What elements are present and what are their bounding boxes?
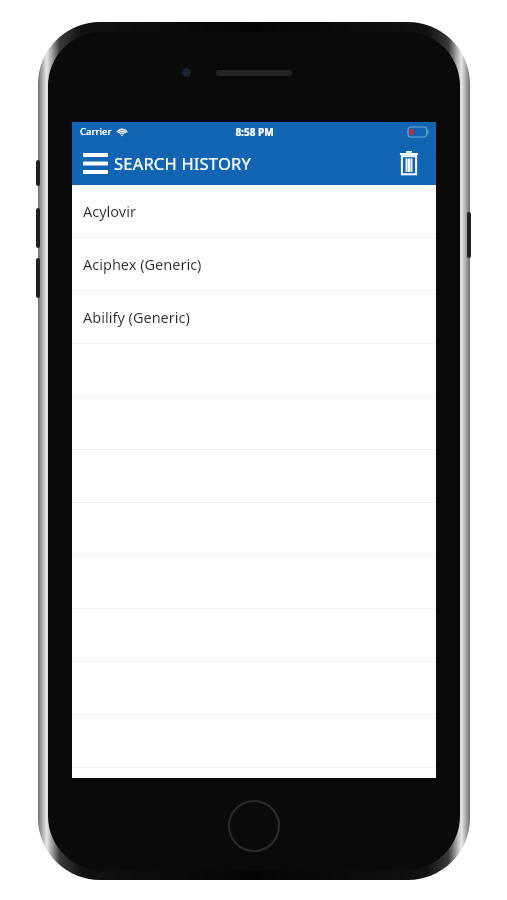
staticText: 8:58 PM bbox=[235, 125, 274, 139]
staticText: Carrier bbox=[80, 125, 112, 138]
staticText: Abilify (Generic) bbox=[83, 307, 190, 327]
button[interactable]: Clear history bbox=[392, 146, 426, 180]
button[interactable]: Aciphex (Generic) bbox=[72, 238, 436, 291]
staticText: SEARCH HISTORY bbox=[114, 152, 251, 174]
staticText: Aciphex (Generic) bbox=[83, 254, 202, 274]
button[interactable]: Abilify (Generic) bbox=[72, 291, 436, 344]
button[interactable]: Menu bbox=[83, 153, 108, 174]
button[interactable]: Acylovir bbox=[72, 185, 436, 238]
staticText: Acylovir bbox=[83, 201, 136, 221]
